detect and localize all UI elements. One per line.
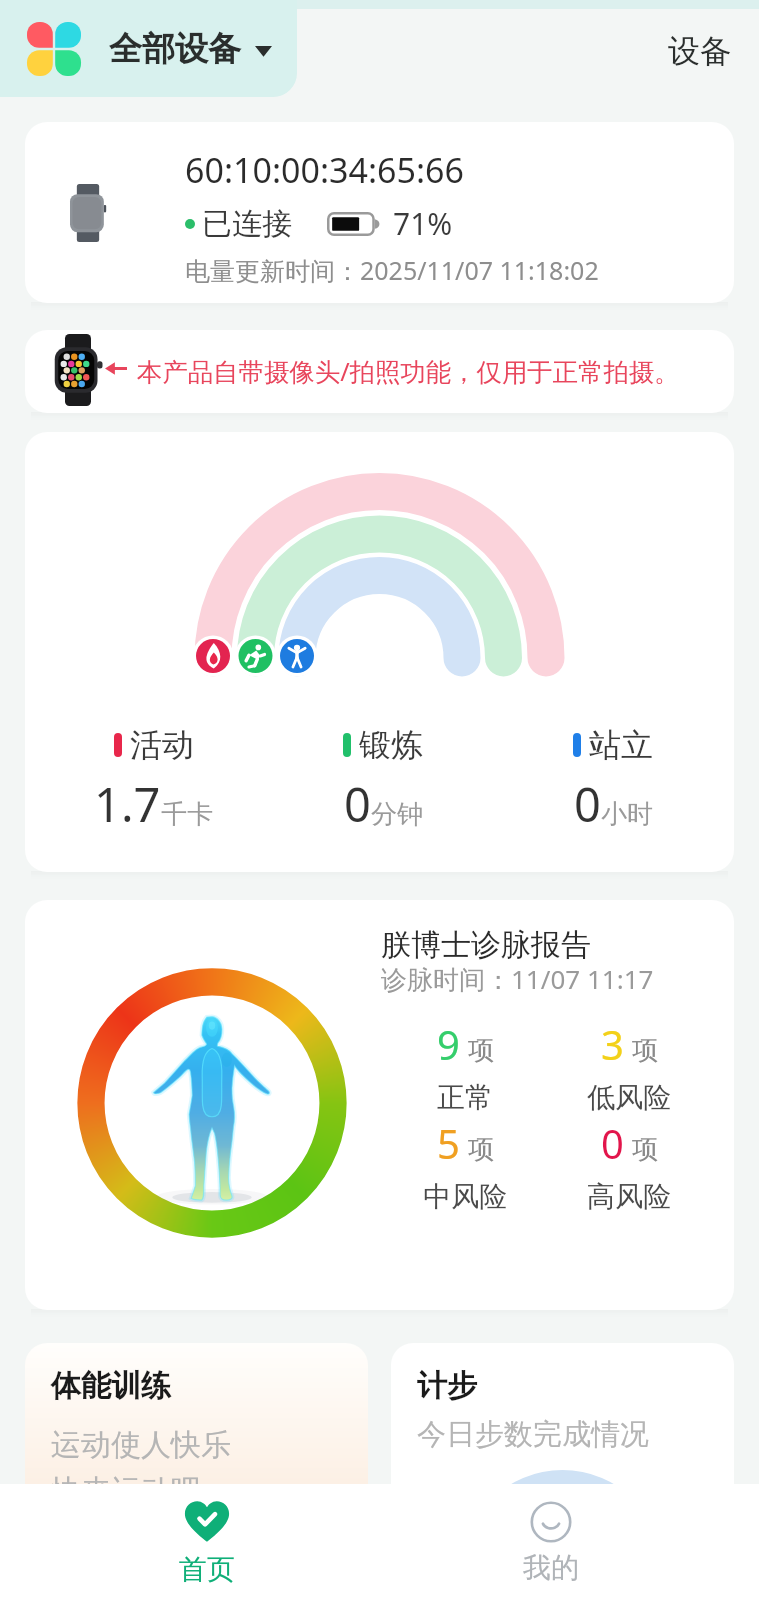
button[interactable]: 朕博士诊脉报告 [25, 900, 734, 1310]
staticText: 项 [468, 1034, 494, 1067]
staticText: 项 [632, 1034, 658, 1067]
staticText: 首页 [179, 1552, 235, 1587]
staticText: 千卡 [161, 798, 213, 831]
staticText: 计步 [417, 1367, 477, 1405]
staticText: 诊脉时间：11/07 11:17 [381, 961, 654, 997]
staticText: 0 [601, 1116, 624, 1170]
staticText: 60:10:00:34:65:66 [185, 147, 464, 193]
button[interactable]: 计步 [391, 1343, 734, 1543]
staticText: 3 [601, 1017, 624, 1071]
staticText: 活动 [130, 725, 194, 765]
staticText: 锻炼 [359, 725, 423, 765]
staticText: 我的 [523, 1550, 579, 1585]
staticText: 设备 [668, 31, 732, 71]
staticText: 71% [393, 203, 453, 244]
button[interactable]: 首页 [112, 1484, 302, 1600]
button[interactable]: 全部设备 [0, 0, 297, 97]
staticText: 中风险 [423, 1179, 507, 1214]
staticText: 正常 [437, 1080, 493, 1115]
button[interactable]: 我的 [456, 1484, 646, 1600]
staticText: 电量更新时间：2025/11/07 11:18:02 [185, 253, 599, 287]
staticText: 0 [344, 772, 371, 836]
staticText: 朕博士诊脉报告 [381, 926, 591, 964]
staticText: 体能训练 [51, 1367, 171, 1405]
staticText: 分钟 [371, 798, 423, 831]
staticText: 项 [468, 1133, 494, 1166]
button[interactable]: 60:10:00:34:65:66 [25, 122, 734, 303]
staticText: 9 [437, 1017, 460, 1071]
staticText: 0 [574, 772, 601, 836]
staticText: 站立 [589, 725, 653, 765]
staticText: 本产品自带摄像头/拍照功能，仅用于正常拍摄。 [137, 354, 680, 389]
staticText: 小时 [601, 798, 653, 831]
staticText: 5 [437, 1116, 460, 1170]
staticText: 项 [632, 1133, 658, 1166]
staticText: 低风险 [587, 1080, 671, 1115]
staticText: 全部设备 [109, 28, 241, 70]
other: 提示箭头 [105, 362, 127, 375]
button[interactable]: 体能训练 [25, 1343, 368, 1543]
button[interactable]: 活动 [25, 432, 734, 872]
staticText: 已连接 [202, 205, 292, 243]
staticText: 1.7 [94, 772, 161, 836]
staticText: 高风险 [587, 1179, 671, 1214]
staticText: 今日步数完成情况 [417, 1416, 649, 1453]
button[interactable]: 提示箭头 [25, 330, 734, 413]
staticText: 运动使人快乐 快来运动吧 [51, 1426, 231, 1510]
button[interactable]: 设备 [641, 17, 759, 85]
